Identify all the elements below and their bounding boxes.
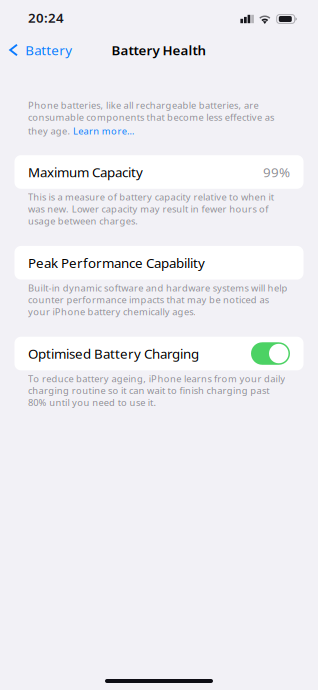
staticText: they age.	[28, 125, 73, 137]
button[interactable]: Peak Performance Capability	[0, 246, 318, 280]
staticText: Peak Performance Capability	[28, 254, 205, 272]
staticText: Optimised Battery Charging	[28, 345, 199, 362]
staticText: Built-in dynamic software and hardware s…	[28, 282, 287, 318]
staticText: Learn more…	[73, 125, 134, 137]
staticText: Phone batteries, like all rechargeable b…	[28, 99, 274, 123]
button[interactable]: Battery	[0, 36, 82, 64]
staticText: 99%	[263, 163, 290, 181]
button[interactable]: Optimised Battery Charging	[251, 342, 290, 365]
staticText: Battery Health	[111, 41, 206, 59]
button[interactable]: Learn more…	[73, 125, 137, 137]
staticText: To reduce battery ageing, iPhone learns …	[28, 372, 285, 408]
staticText: 20:24	[28, 9, 64, 26]
staticText: Maximum Capacity	[28, 163, 143, 181]
staticText: This is a measure of battery capacity re…	[28, 191, 274, 227]
staticText: Battery	[25, 41, 72, 59]
